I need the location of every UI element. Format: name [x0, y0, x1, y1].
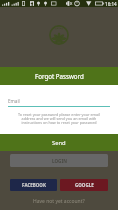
button[interactable]: Have not yet account?	[33, 198, 85, 205]
button[interactable]: GOOGLE	[60, 179, 108, 191]
button[interactable]: FACEBOOK	[10, 179, 57, 191]
button[interactable]: LOGIN	[10, 154, 108, 167]
staticText: LOGIN	[52, 158, 67, 164]
staticText: To reset your password please enter your…	[15, 112, 103, 125]
staticText: 16:14	[105, 1, 117, 7]
staticText: FACEBOOK	[22, 182, 46, 188]
button[interactable]: Send	[0, 134, 118, 151]
staticText: Send	[52, 139, 66, 147]
staticText: GOOGLE	[75, 182, 94, 188]
staticText: Email	[8, 98, 20, 104]
staticText: Forgot Password	[35, 72, 84, 80]
